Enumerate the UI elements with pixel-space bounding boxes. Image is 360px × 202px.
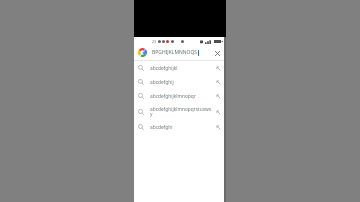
button[interactable]: abcdefghijklmnopqr <box>134 89 226 103</box>
staticText: abcdefghijklmnopqrstuvwxy <box>150 106 212 118</box>
staticText: abcdefghi <box>150 124 212 131</box>
staticText: abcdefghijkl <box>150 65 212 72</box>
button[interactable]: abcdefghi <box>134 120 226 134</box>
button[interactable]: BPGHIJKLMNNOQS <box>134 45 226 60</box>
staticText: 23 <box>152 39 157 44</box>
button[interactable]: Insert suggestion <box>214 64 222 72</box>
staticText: BPGHIJKLMNNOQS <box>152 49 198 56</box>
button[interactable]: Insert suggestion <box>214 108 222 116</box>
staticText: abcdefghij <box>150 79 212 86</box>
button[interactable]: abcdefghijklmnopqrstuvwxy <box>134 103 226 120</box>
button[interactable]: abcdefghijkl <box>134 61 226 75</box>
button[interactable]: Clear search <box>212 48 222 58</box>
button[interactable]: abcdefghij <box>134 75 226 89</box>
button[interactable]: Insert suggestion <box>214 123 222 131</box>
staticText: abcdefghijklmnopqr <box>150 93 212 100</box>
button[interactable]: Insert suggestion <box>214 78 222 86</box>
button[interactable]: Insert suggestion <box>214 92 222 100</box>
